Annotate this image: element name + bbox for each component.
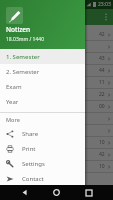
staticText: Settings (22, 160, 45, 168)
button[interactable]: More options (99, 10, 113, 24)
button[interactable]: 1. Semester (0, 49, 85, 64)
button[interactable]: Settings (0, 156, 85, 171)
staticText: 1. Semester (6, 53, 40, 61)
button[interactable]: 2. Semester (0, 64, 85, 79)
button[interactable]: Share (0, 126, 85, 141)
button[interactable]: Home (49, 185, 64, 200)
button[interactable]: Year (0, 94, 85, 109)
button[interactable]: 42 (0, 29, 113, 40)
button[interactable]: Print (0, 141, 85, 156)
staticText: Exam (6, 83, 22, 91)
staticText: 18.03mm / 1440 (6, 36, 45, 43)
staticText: More (6, 116, 20, 123)
button[interactable]: Recent apps (81, 185, 96, 200)
button[interactable] (0, 125, 113, 136)
button[interactable]: 10 (0, 161, 113, 172)
button[interactable] (0, 41, 113, 52)
staticText: 2. Semester (6, 68, 40, 76)
staticText: 10 (99, 139, 105, 146)
staticText: Print (22, 145, 36, 153)
button[interactable] (0, 113, 113, 124)
button[interactable]: 00 (0, 101, 113, 112)
button[interactable]: Exam (0, 79, 85, 94)
button[interactable]: 11 (0, 77, 113, 88)
button[interactable]: 44 (0, 65, 113, 76)
staticText: Year (6, 98, 19, 106)
staticText: 22 (99, 91, 105, 98)
staticText: 23:03 (98, 1, 111, 8)
staticText: 42 (99, 31, 105, 38)
staticText: 42 (99, 151, 105, 158)
staticText: 00 (99, 103, 105, 110)
staticText: 10 (99, 163, 105, 170)
button[interactable]: 10 (0, 137, 113, 148)
staticText: Share (22, 130, 39, 138)
button[interactable]: 43 (0, 53, 113, 64)
staticText: 43 (99, 55, 105, 62)
button[interactable]: 42 (0, 149, 113, 160)
staticText: Contact (22, 175, 44, 183)
button[interactable]: Back (17, 185, 32, 200)
staticText: 11 (99, 79, 105, 86)
button[interactable]: 22 (0, 89, 113, 100)
staticText: 44 (99, 67, 105, 74)
staticText: Notizen (6, 25, 31, 34)
button[interactable]: Contact (0, 171, 85, 186)
